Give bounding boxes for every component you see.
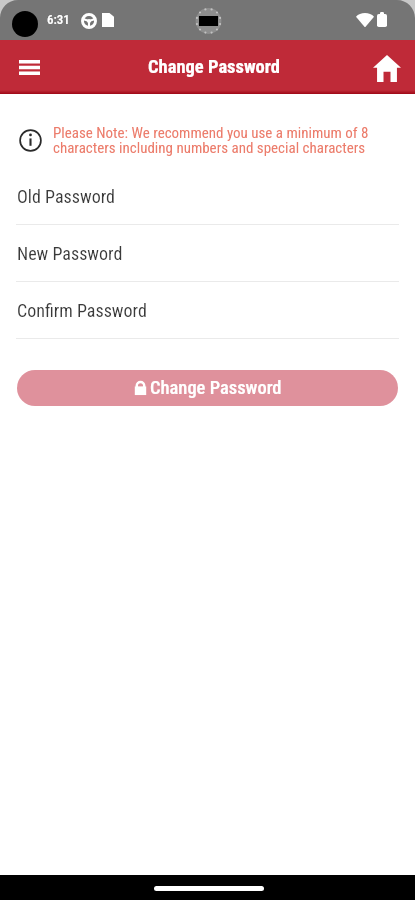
staticText: Confirm Password bbox=[17, 300, 147, 321]
staticText: Old Password bbox=[17, 186, 115, 207]
staticText: 6:31 bbox=[47, 12, 70, 27]
staticText: Change Password bbox=[150, 377, 282, 399]
button[interactable]: Change Password bbox=[17, 370, 398, 406]
button[interactable]: Old Password bbox=[0, 168, 415, 225]
staticText: Change Password bbox=[148, 56, 280, 78]
button[interactable]: Confirm Password bbox=[0, 282, 415, 339]
button[interactable]: Home bbox=[360, 41, 414, 95]
button[interactable]: Menu bbox=[0, 40, 58, 94]
staticText: New Password bbox=[17, 243, 123, 264]
button[interactable]: New Password bbox=[0, 225, 415, 282]
staticText: Please Note: We recommend you use a mini… bbox=[53, 124, 375, 157]
